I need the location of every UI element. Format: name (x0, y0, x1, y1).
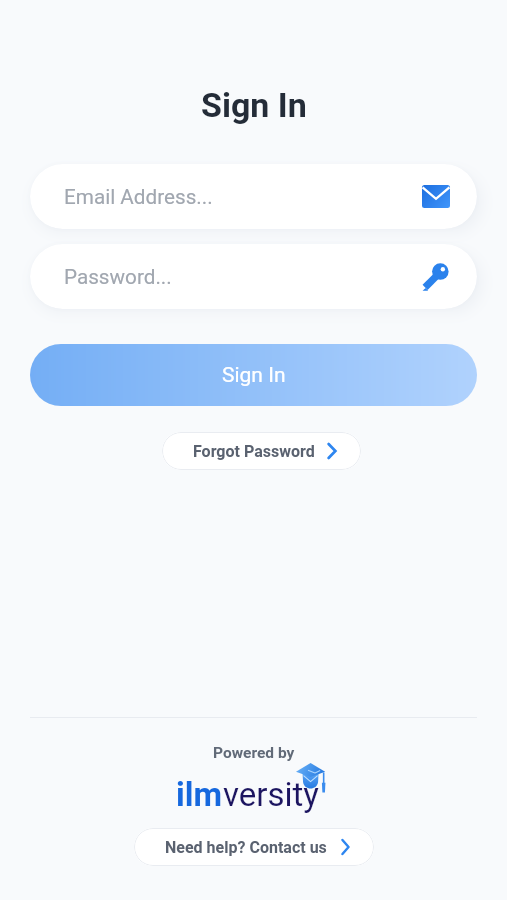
other: Email (422, 185, 450, 208)
staticText: Sign In (201, 85, 307, 125)
staticText: Password... (64, 265, 172, 289)
staticText: Need help? Contact us (165, 838, 327, 857)
button[interactable]: Forgot Password (162, 432, 361, 470)
staticText: Powered by (213, 744, 295, 762)
staticText: versity (223, 775, 319, 814)
button[interactable]: Email Address... (30, 164, 477, 229)
staticText: ilm (176, 775, 223, 814)
staticText: Forgot Password (193, 442, 315, 461)
button[interactable]: Need help? Contact us (134, 828, 374, 866)
staticText: Sign In (222, 363, 286, 388)
button[interactable]: Password... (30, 244, 477, 309)
staticText: Email Address... (64, 185, 213, 209)
button[interactable]: Sign In (30, 344, 477, 406)
other: Password (422, 263, 450, 291)
